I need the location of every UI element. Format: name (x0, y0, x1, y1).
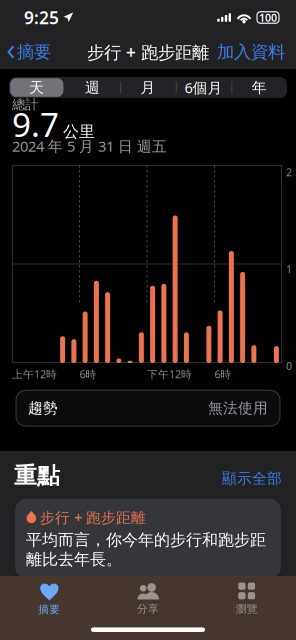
staticText: 顯示全部 (222, 469, 282, 487)
button[interactable]: 週 (65, 77, 120, 98)
staticText: 瀏覽 (236, 602, 258, 615)
staticText: 步行 + 跑步距離 (40, 507, 146, 527)
staticText: 分享 (137, 602, 159, 615)
staticText: 100 (259, 10, 277, 25)
staticText: 摘要 (38, 603, 60, 616)
button[interactable]: 分享 (99, 582, 197, 616)
button[interactable]: 天 (9, 77, 65, 98)
staticText: 9:25 (24, 6, 59, 29)
staticText: 加入資料 (217, 41, 285, 63)
staticText: 步行 + 跑步距離 (87, 40, 209, 63)
button[interactable]: 6個月 (176, 77, 231, 98)
button[interactable]: 月 (120, 77, 176, 98)
staticText: 年 (252, 78, 267, 96)
staticText: 上午12時 (12, 367, 57, 381)
staticText: 趨勢 (28, 399, 58, 417)
staticText: 9.7 (12, 102, 59, 146)
staticText: 6時 (79, 367, 96, 381)
staticText: 月 (140, 78, 155, 96)
staticText: 2024 年 5 月 31 日 週五 (12, 136, 167, 156)
button[interactable]: 顯示全部 (222, 469, 282, 489)
button[interactable]: 摘要 (0, 35, 57, 69)
button[interactable]: 趨勢 (16, 390, 280, 426)
staticText: 總計 (12, 96, 38, 113)
staticText: 公里 (63, 122, 95, 141)
staticText: 6個月 (185, 78, 223, 97)
staticText: 1 (286, 262, 292, 276)
staticText: 無法使用 (208, 399, 268, 417)
staticText: 天 (29, 78, 44, 96)
staticText: 平均而言，你今年的步行和跑步距離比去年長。 (26, 530, 266, 569)
staticText: 重點 (14, 462, 60, 489)
button[interactable]: 加入資料 (211, 35, 296, 69)
staticText: 6時 (214, 367, 231, 381)
staticText: 0 (286, 359, 292, 373)
staticText: 下午12時 (147, 367, 192, 381)
button[interactable]: 瀏覽 (197, 582, 296, 616)
button[interactable]: 摘要 (0, 582, 99, 616)
staticText: 週 (85, 78, 100, 96)
staticText: 2 (286, 165, 292, 179)
staticText: 摘要 (17, 41, 51, 63)
button[interactable]: 年 (231, 77, 287, 98)
